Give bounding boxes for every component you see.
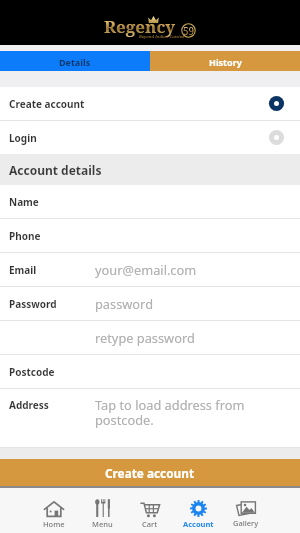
staticText: History [209, 56, 242, 68]
button[interactable]: Cart [126, 488, 174, 533]
staticText: password [95, 295, 154, 312]
button[interactable]: Phone [0, 219, 300, 252]
button[interactable]: Gallery [222, 488, 270, 533]
button[interactable]: Postcode [0, 355, 300, 388]
staticText: Tap to load address from postcode. [95, 396, 290, 429]
button[interactable]: Create account [0, 459, 300, 486]
button[interactable]: Details [0, 51, 150, 71]
staticText: retype password [95, 329, 195, 346]
staticText: Create account [9, 97, 85, 111]
button[interactable]: Login [0, 121, 300, 154]
button[interactable]: Password [0, 287, 300, 320]
staticText: Email [9, 263, 37, 277]
staticText: Regency [104, 15, 176, 38]
button[interactable]: Address [0, 389, 300, 447]
staticText: Details [59, 56, 91, 68]
button[interactable]: Email [0, 253, 300, 286]
staticText: 59 [183, 24, 195, 38]
staticText: Account details [9, 162, 102, 178]
button[interactable]: Home [30, 488, 78, 533]
staticText: Phone [9, 229, 41, 243]
button[interactable]: Name [0, 185, 300, 218]
button[interactable]: Menu [78, 488, 126, 533]
staticText: Address [9, 398, 49, 412]
staticText: Gallery [233, 518, 259, 528]
staticText: Menu [92, 519, 113, 529]
staticText: Account [183, 519, 214, 529]
button[interactable]: retype password [0, 321, 300, 354]
button[interactable]: History [150, 51, 300, 71]
staticText: your@email.com [95, 261, 197, 278]
button[interactable]: Create account [0, 87, 300, 120]
staticText: Create account [105, 465, 195, 481]
staticText: Cart [142, 519, 158, 529]
button[interactable]: Account [174, 488, 222, 533]
staticText: Postcode [9, 365, 55, 379]
staticText: Beyond Indian Cuisine [139, 34, 185, 40]
staticText: Login [9, 131, 37, 145]
staticText: Password [9, 297, 57, 311]
staticText: Home [43, 519, 65, 529]
staticText: Name [9, 195, 39, 209]
